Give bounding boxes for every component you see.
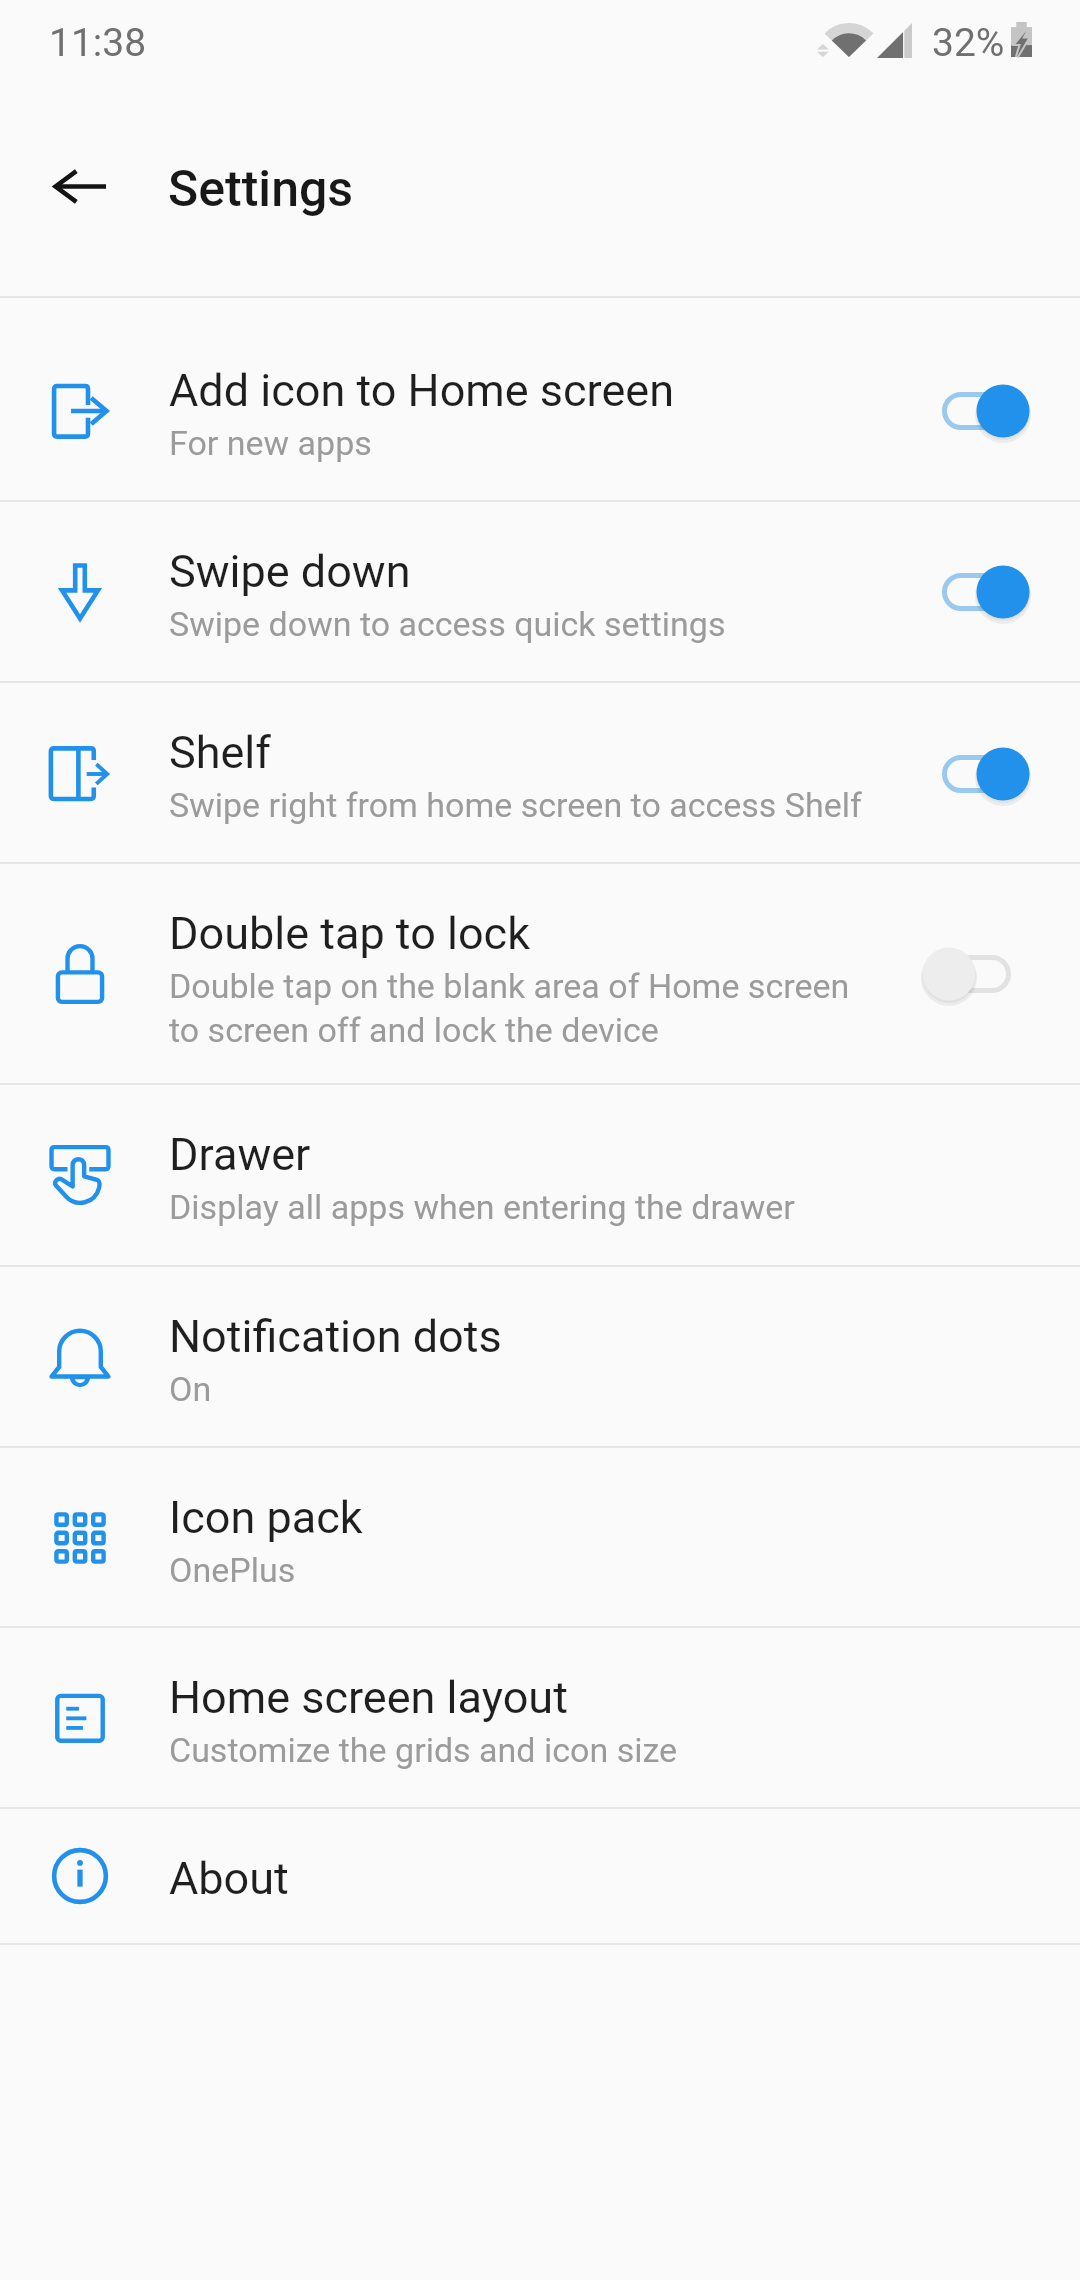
staticText: Customize the grids and icon size xyxy=(169,1727,678,1771)
staticText: Swipe down xyxy=(169,545,411,598)
button[interactable]: Add icon to Home screen xyxy=(0,298,1080,500)
staticText: About xyxy=(169,1852,289,1905)
staticText: Double tap on the blank area of Home scr… xyxy=(169,963,850,1051)
staticText: 11:38 xyxy=(49,20,147,66)
button[interactable]: Notification dots xyxy=(0,1267,1080,1446)
staticText: Notification dots xyxy=(169,1310,502,1363)
staticText: Settings xyxy=(168,160,354,219)
staticText: OnePlus xyxy=(169,1547,296,1591)
staticText: Home screen layout xyxy=(169,1671,568,1724)
button[interactable]: Double tap to lock xyxy=(0,864,1080,1083)
staticText: 32% xyxy=(932,20,1005,66)
button[interactable]: Toggle on xyxy=(896,714,1056,834)
staticText: Shelf xyxy=(169,726,271,779)
button[interactable]: Toggle off xyxy=(896,914,1056,1034)
button[interactable]: Toggle on xyxy=(896,532,1056,652)
button[interactable]: Toggle on xyxy=(896,351,1056,471)
button[interactable]: Icon pack xyxy=(0,1448,1080,1626)
button[interactable]: Swipe down xyxy=(0,502,1080,681)
staticText: Icon pack xyxy=(169,1491,363,1544)
staticText: For new apps xyxy=(169,420,372,464)
staticText: Drawer xyxy=(169,1128,311,1181)
button[interactable]: About xyxy=(0,1809,1080,1943)
staticText: Add icon to Home screen xyxy=(169,364,674,417)
button[interactable]: Home screen layout xyxy=(0,1628,1080,1807)
staticText: Display all apps when entering the drawe… xyxy=(169,1184,795,1228)
button[interactable]: Back xyxy=(17,138,141,234)
button[interactable]: Shelf xyxy=(0,683,1080,862)
staticText: Double tap to lock xyxy=(169,907,530,960)
staticText: Swipe right from home screen to access S… xyxy=(169,782,862,826)
button[interactable]: Drawer xyxy=(0,1085,1080,1265)
staticText: On xyxy=(169,1366,212,1410)
staticText: Swipe down to access quick settings xyxy=(169,601,726,645)
